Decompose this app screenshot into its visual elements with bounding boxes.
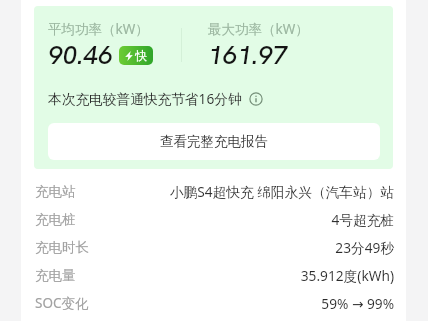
button[interactable]: 充电时长 [0, 233, 428, 261]
staticText: 23分49秒 [335, 238, 394, 257]
staticText: 充电站 [35, 183, 76, 200]
button[interactable]: 充电桩 [0, 205, 428, 233]
staticText: SOC变化 [35, 294, 89, 312]
button[interactable]: SOC变化 [0, 289, 428, 317]
staticText: 161.97 [208, 38, 288, 72]
staticText: 快 [135, 48, 147, 63]
staticText: 充电桩 [35, 211, 76, 228]
staticText: 充电时长 [35, 239, 89, 256]
staticText: 59% → 99% [321, 294, 394, 313]
button[interactable]: 查看完整充电报告 [48, 123, 380, 160]
staticText: 本次充电较普通快充节省16分钟 [48, 89, 242, 108]
staticText: 小鹏S4超快充 绵阳永兴（汽车站）站 [169, 182, 394, 201]
button[interactable]: 充电站 [0, 177, 428, 205]
staticText: 平均功率（kW） [48, 20, 149, 38]
staticText: 充电量 [35, 267, 76, 284]
other: More info [249, 92, 263, 106]
staticText: 查看完整充电报告 [160, 133, 268, 150]
staticText: 90.46 [48, 38, 113, 72]
staticText: 4号超充桩 [331, 210, 394, 229]
button[interactable]: 充电量 [0, 261, 428, 289]
staticText: 35.912度(kWh) [300, 266, 394, 285]
staticText: 最大功率（kW） [208, 20, 309, 38]
button[interactable]: 本次充电较普通快充节省16分钟 [48, 89, 263, 108]
